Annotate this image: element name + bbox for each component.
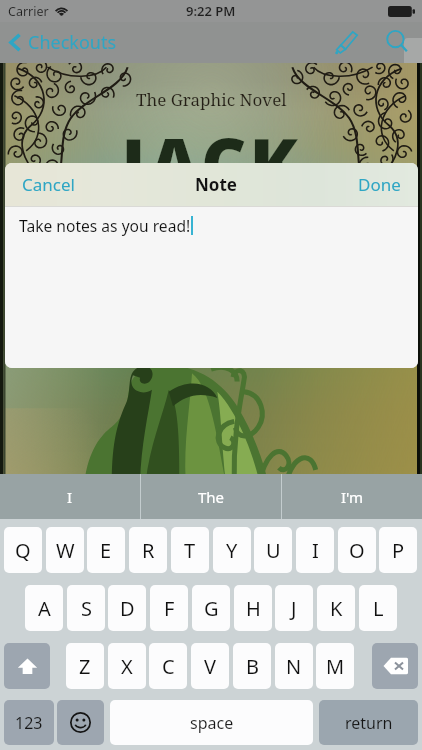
staticText: B <box>246 653 259 680</box>
button[interactable]: Done <box>341 164 418 205</box>
button[interactable]: K <box>317 585 355 631</box>
staticText: Take notes as you read! <box>19 215 191 236</box>
staticText: space <box>190 712 234 734</box>
button[interactable]: X <box>108 643 146 689</box>
button[interactable]: C <box>149 643 187 689</box>
button[interactable]: J <box>275 585 313 631</box>
button[interactable]: N <box>275 643 313 689</box>
button[interactable]: I <box>0 474 140 519</box>
button[interactable]: Backspace <box>372 643 418 689</box>
staticText: G <box>204 595 219 622</box>
staticText: R <box>142 537 155 564</box>
button[interactable]: I'm <box>282 474 422 519</box>
staticText: M <box>326 653 345 680</box>
staticText: Note <box>195 173 237 196</box>
staticText: T <box>184 537 196 564</box>
button[interactable]: Z <box>66 643 104 689</box>
button[interactable]: space <box>110 700 313 745</box>
button[interactable]: D <box>108 585 146 631</box>
staticText: The Graphic Novel <box>136 88 287 111</box>
staticText: I <box>312 537 319 564</box>
button[interactable]: U <box>254 527 292 573</box>
button[interactable]: 123 <box>4 700 54 745</box>
staticText: X <box>121 653 133 680</box>
button[interactable]: I <box>296 527 334 573</box>
button[interactable]: Y <box>213 527 251 573</box>
button[interactable]: Highlight <box>324 22 368 63</box>
button[interactable]: H <box>234 585 272 631</box>
button[interactable]: Q <box>4 527 42 573</box>
button[interactable]: return <box>319 700 418 745</box>
button[interactable]: R <box>129 527 167 573</box>
staticText: I'm <box>341 487 364 507</box>
button[interactable]: S <box>67 585 105 631</box>
button[interactable]: P <box>379 527 417 573</box>
staticText: U <box>266 537 281 564</box>
staticText: C <box>162 653 175 680</box>
staticText: S <box>81 595 92 622</box>
button[interactable]: O <box>338 527 376 573</box>
button[interactable]: Checkouts <box>0 25 129 60</box>
staticText: I <box>67 487 73 507</box>
staticText: E <box>100 537 112 564</box>
staticText: Carrier <box>8 3 49 20</box>
button[interactable]: W <box>46 527 84 573</box>
button[interactable]: A <box>25 585 63 631</box>
staticText: P <box>392 537 405 564</box>
button[interactable]: M <box>316 643 354 689</box>
staticText: A <box>38 595 51 622</box>
button[interactable]: F <box>150 585 188 631</box>
staticText: D <box>120 595 135 622</box>
button[interactable]: Cancel <box>5 164 92 205</box>
button[interactable]: B <box>233 643 271 689</box>
staticText: The <box>198 487 225 507</box>
staticText: F <box>164 595 175 622</box>
staticText: Y <box>226 537 238 564</box>
button[interactable]: V <box>191 643 229 689</box>
button[interactable]: Search <box>376 22 420 63</box>
staticText: Checkouts <box>28 30 117 55</box>
button[interactable]: Shift <box>4 643 50 689</box>
staticText: K <box>330 595 343 622</box>
button[interactable]: E <box>87 527 125 573</box>
staticText: Q <box>15 537 31 564</box>
staticText: O <box>349 537 365 564</box>
staticText: V <box>204 653 216 680</box>
staticText: W <box>56 537 75 564</box>
staticText: Done <box>358 173 401 196</box>
staticText: JACK <box>121 115 301 210</box>
staticText: Cancel <box>22 173 75 196</box>
staticText: J <box>291 595 297 622</box>
button[interactable]: L <box>359 585 397 631</box>
button[interactable]: Emoji <box>57 700 104 745</box>
staticText: H <box>246 595 261 622</box>
staticText: 123 <box>15 712 43 734</box>
staticText: 9:22 PM <box>186 2 236 20</box>
staticText: Z <box>79 653 91 680</box>
button[interactable]: G <box>192 585 230 631</box>
button[interactable]: The <box>141 474 281 519</box>
staticText: return <box>345 712 393 734</box>
button[interactable]: T <box>171 527 209 573</box>
staticText: L <box>373 595 384 622</box>
staticText: N <box>286 653 302 680</box>
